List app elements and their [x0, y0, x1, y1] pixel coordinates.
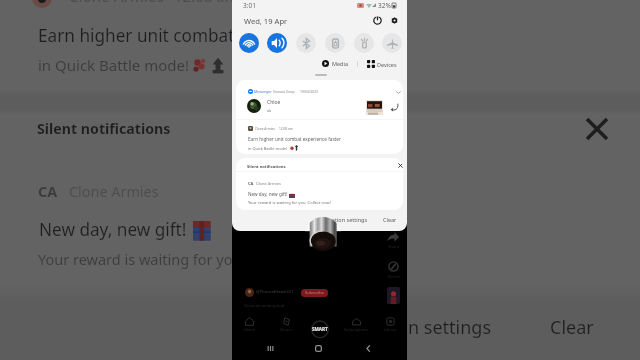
button[interactable]: Subscriptions [338, 317, 374, 332]
staticText: 12:08 am [279, 127, 293, 131]
button[interactable]: Home [312, 342, 325, 355]
staticText: CA [38, 182, 58, 202]
staticText: 12:08 am [174, 0, 239, 6]
staticText: Your reward is waiting for yo [38, 249, 233, 269]
staticText: Smaoat Goop [273, 89, 295, 94]
button[interactable]: Notification settings [312, 213, 365, 225]
staticText: Gona be writing bud [244, 303, 285, 309]
button[interactable]: Library [372, 317, 408, 332]
staticText: in Quick Battle mode! [248, 146, 288, 151]
staticText: in Quick Battle mode! [38, 55, 190, 75]
staticText: Notification settings [315, 216, 368, 223]
button[interactable]: Settings [389, 15, 400, 26]
staticText: ok [267, 108, 272, 113]
button[interactable]: Media [322, 60, 348, 67]
staticText: Clone Armies [69, 182, 159, 202]
button[interactable]: Subscribe [301, 289, 328, 297]
button[interactable]: Sound [387, 287, 400, 304]
staticText: Silent notifications [37, 119, 171, 138]
button[interactable]: Clear [380, 213, 394, 225]
staticText: Remix [388, 274, 401, 280]
button[interactable]: Wi-Fi [239, 33, 259, 53]
staticText: Shorts [280, 327, 292, 332]
button[interactable]: Back [362, 342, 375, 355]
button[interactable]: Recent apps [264, 342, 277, 355]
staticText: Clear [550, 315, 594, 340]
staticText: CA [248, 181, 254, 186]
button[interactable]: Remix [388, 261, 399, 272]
staticText: New day, new gift! [39, 218, 187, 241]
staticText: @TheseafHawk321 [256, 289, 294, 295]
staticText: Chloe [267, 99, 281, 106]
staticText: Earn higher unit combat experience faste… [248, 136, 341, 142]
staticText: 32% [378, 1, 391, 10]
staticText: Subscriptions [344, 327, 369, 332]
button[interactable]: Share [387, 232, 399, 244]
staticText: Clone Armies [255, 127, 275, 131]
staticText: Share [388, 244, 400, 250]
button[interactable]: Airplane mode [382, 33, 402, 53]
staticText: Media [332, 60, 348, 67]
staticText: SMART [312, 326, 328, 332]
button[interactable]: Power off [372, 15, 383, 26]
button[interactable]: Silent notifications [236, 158, 403, 171]
staticText: Clear [383, 216, 397, 223]
staticText: Messenger [254, 89, 272, 94]
button[interactable]: Devices [367, 60, 397, 68]
staticText: n settings [408, 315, 492, 340]
button[interactable]: Dismiss silent notifications [395, 160, 403, 171]
staticText: Earn higher unit combat [38, 24, 235, 47]
button[interactable]: Flashlight [354, 33, 374, 53]
button[interactable]: Home [231, 317, 267, 332]
button[interactable]: Expand [396, 90, 401, 95]
button[interactable]: Reply [390, 103, 399, 112]
button[interactable]: Shorts [268, 317, 304, 332]
staticText: Devices [377, 61, 397, 68]
staticText: 3:01 [243, 1, 256, 10]
button[interactable]: SMART [302, 313, 338, 337]
staticText: Your reward is waiting for you. Collect … [248, 200, 331, 206]
staticText: Home [244, 327, 255, 332]
button[interactable]: Bluetooth [296, 33, 316, 53]
staticText: Silent notifications [247, 164, 286, 170]
staticText: Wed, 19 Apr [244, 16, 288, 26]
button[interactable]: Sound [267, 33, 287, 53]
staticText: Clone Armies [256, 181, 281, 186]
button[interactable]: NFC [325, 33, 345, 53]
staticText: Subscribe [305, 290, 325, 296]
staticText: New day, new gift! [248, 191, 288, 197]
staticText: 19/04/2023 [300, 89, 319, 94]
staticText: Library [384, 327, 397, 332]
staticText: Clone Armies [69, 0, 164, 6]
